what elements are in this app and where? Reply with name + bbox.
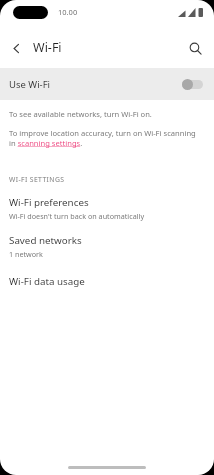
staticText: Wi-Fi preferences bbox=[9, 196, 89, 209]
button[interactable]: Use Wi-Fi bbox=[0, 68, 214, 100]
staticText: 1 network bbox=[9, 249, 43, 259]
staticText: Wi-Fi bbox=[33, 39, 62, 56]
staticText: Saved networks bbox=[9, 234, 82, 247]
staticText: Wi-Fi doesn't turn back on automatically bbox=[9, 211, 145, 221]
staticText: 10.00 bbox=[58, 7, 78, 17]
button[interactable]: Back bbox=[4, 36, 28, 60]
button[interactable]: Saved networks bbox=[0, 234, 214, 259]
staticText: To improve location accuracy, turn on Wi… bbox=[9, 128, 202, 148]
staticText: Wi-Fi data usage bbox=[9, 275, 85, 288]
staticText: To see available networks, turn Wi-Fi on… bbox=[9, 109, 152, 119]
staticText: WI-FI SETTINGS bbox=[9, 175, 65, 184]
button[interactable]: Wi-Fi preferences bbox=[0, 196, 214, 221]
button[interactable]: Wi-Fi data usage bbox=[0, 275, 214, 288]
staticText: Use Wi-Fi bbox=[9, 78, 51, 91]
button[interactable]: Search bbox=[182, 35, 208, 61]
